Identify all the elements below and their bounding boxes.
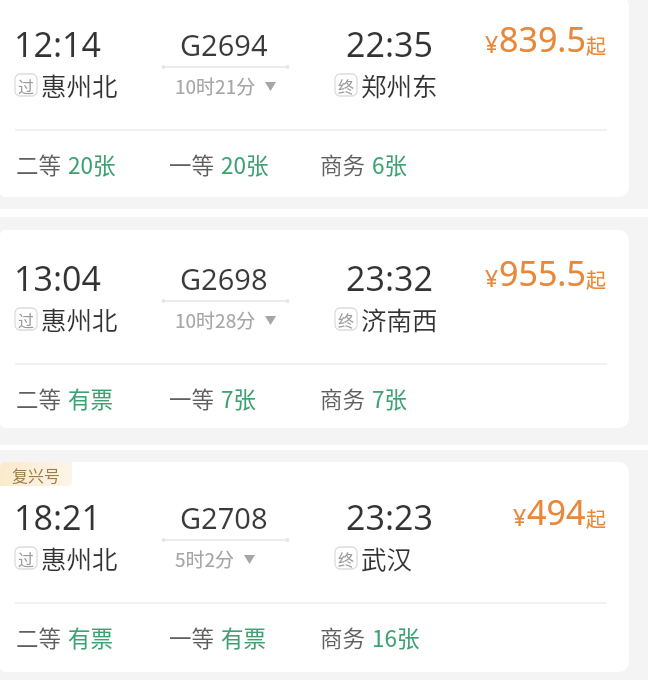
staticText: G2698 bbox=[180, 259, 268, 298]
staticText: 终 bbox=[338, 547, 355, 569]
staticText: 过 bbox=[18, 308, 35, 330]
staticText: 有票 bbox=[68, 382, 114, 415]
staticText: 武汉 bbox=[361, 539, 413, 576]
staticText: ¥ bbox=[485, 28, 499, 59]
staticText: 一等 bbox=[169, 621, 215, 654]
staticText: 10时21分 bbox=[175, 72, 256, 100]
staticText: 494 bbox=[527, 489, 586, 535]
staticText: ¥ bbox=[513, 501, 527, 532]
staticText: 济南西 bbox=[361, 300, 438, 337]
staticText: 22:35 bbox=[346, 21, 433, 67]
staticText: 商务 bbox=[320, 621, 366, 654]
button[interactable]: 复兴号 bbox=[0, 462, 629, 672]
staticText: 23:32 bbox=[346, 255, 433, 301]
staticText: 955.5 bbox=[499, 250, 586, 296]
staticText: ¥ bbox=[485, 262, 499, 293]
staticText: 终 bbox=[338, 308, 355, 330]
staticText: 过 bbox=[18, 74, 35, 96]
staticText: 23:23 bbox=[346, 494, 433, 540]
button[interactable]: 13:04 bbox=[0, 230, 629, 428]
staticText: 起 bbox=[586, 265, 606, 294]
staticText: 18:21 bbox=[14, 494, 101, 540]
staticText: 7张 bbox=[372, 382, 407, 415]
staticText: 一等 bbox=[169, 382, 215, 415]
staticText: 商务 bbox=[320, 382, 366, 415]
staticText: 20张 bbox=[68, 148, 116, 181]
staticText: 13:04 bbox=[14, 255, 101, 301]
staticText: 20张 bbox=[221, 148, 269, 181]
staticText: 16张 bbox=[372, 621, 420, 654]
staticText: 起 bbox=[586, 504, 606, 533]
staticText: 起 bbox=[586, 31, 606, 60]
staticText: 惠州北 bbox=[41, 539, 118, 576]
staticText: 二等 bbox=[16, 382, 62, 415]
staticText: G2694 bbox=[180, 25, 268, 64]
staticText: 终 bbox=[338, 74, 355, 96]
staticText: 10时28分 bbox=[175, 306, 256, 334]
staticText: 5时2分 bbox=[175, 545, 235, 573]
staticText: G2708 bbox=[180, 498, 268, 537]
staticText: 一等 bbox=[169, 148, 215, 181]
staticText: 839.5 bbox=[499, 16, 586, 62]
staticText: 有票 bbox=[68, 621, 114, 654]
staticText: 复兴号 bbox=[12, 463, 61, 486]
staticText: 12:14 bbox=[14, 21, 101, 67]
staticText: 7张 bbox=[221, 382, 256, 415]
staticText: 有票 bbox=[221, 621, 267, 654]
staticText: 过 bbox=[18, 547, 35, 569]
staticText: 6张 bbox=[372, 148, 407, 181]
staticText: 惠州北 bbox=[41, 66, 118, 103]
staticText: 二等 bbox=[16, 621, 62, 654]
staticText: 惠州北 bbox=[41, 300, 118, 337]
staticText: 二等 bbox=[16, 148, 62, 181]
staticText: 郑州东 bbox=[361, 66, 438, 103]
button[interactable]: 12:14 bbox=[0, 0, 629, 197]
staticText: 商务 bbox=[320, 148, 366, 181]
